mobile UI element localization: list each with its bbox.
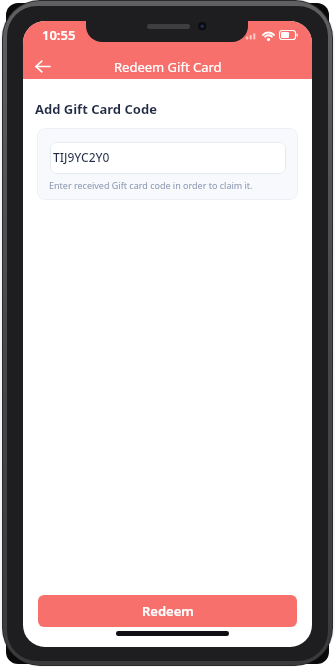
- staticText: Enter received Gift card code in order t…: [49, 179, 253, 191]
- staticText: 10:55: [42, 26, 76, 44]
- staticText: TIJ9YC2Y0: [53, 149, 110, 165]
- button[interactable]: [29, 53, 57, 80]
- button[interactable]: Redeem: [38, 595, 297, 627]
- staticText: Redeem Gift Card: [114, 58, 222, 76]
- staticText: Redeem: [142, 602, 194, 620]
- staticText: Add Gift Card Code: [35, 100, 157, 118]
- button[interactable]: TIJ9YC2Y0: [50, 142, 286, 174]
